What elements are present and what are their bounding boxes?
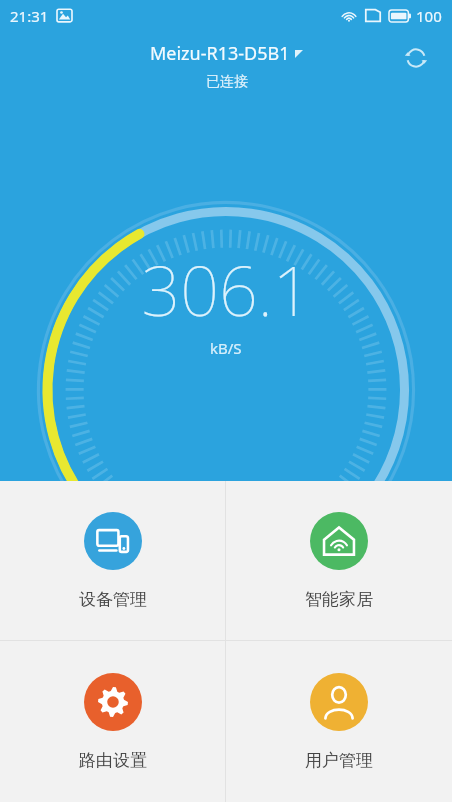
button[interactable]: 智能家居 bbox=[226, 481, 452, 640]
staticText: 306.1 bbox=[141, 243, 312, 336]
staticText: 用户管理 bbox=[305, 750, 373, 771]
staticText: 智能家居 bbox=[305, 589, 373, 610]
staticText: 设备管理 bbox=[79, 589, 147, 610]
button[interactable]: 设备管理 bbox=[0, 481, 225, 640]
staticText: 21:31 bbox=[10, 6, 49, 26]
button[interactable]: Meizu-R13-D5B1 bbox=[150, 41, 303, 66]
button[interactable]: Refresh bbox=[398, 40, 434, 76]
staticText: 已连接 bbox=[206, 73, 248, 91]
staticText: 100 bbox=[416, 6, 442, 26]
staticText: kB/S bbox=[210, 338, 242, 358]
staticText: Meizu-R13-D5B1 bbox=[150, 41, 290, 66]
button[interactable]: 路由设置 bbox=[0, 641, 225, 802]
staticText: 路由设置 bbox=[79, 750, 147, 771]
button[interactable]: 用户管理 bbox=[226, 641, 452, 802]
